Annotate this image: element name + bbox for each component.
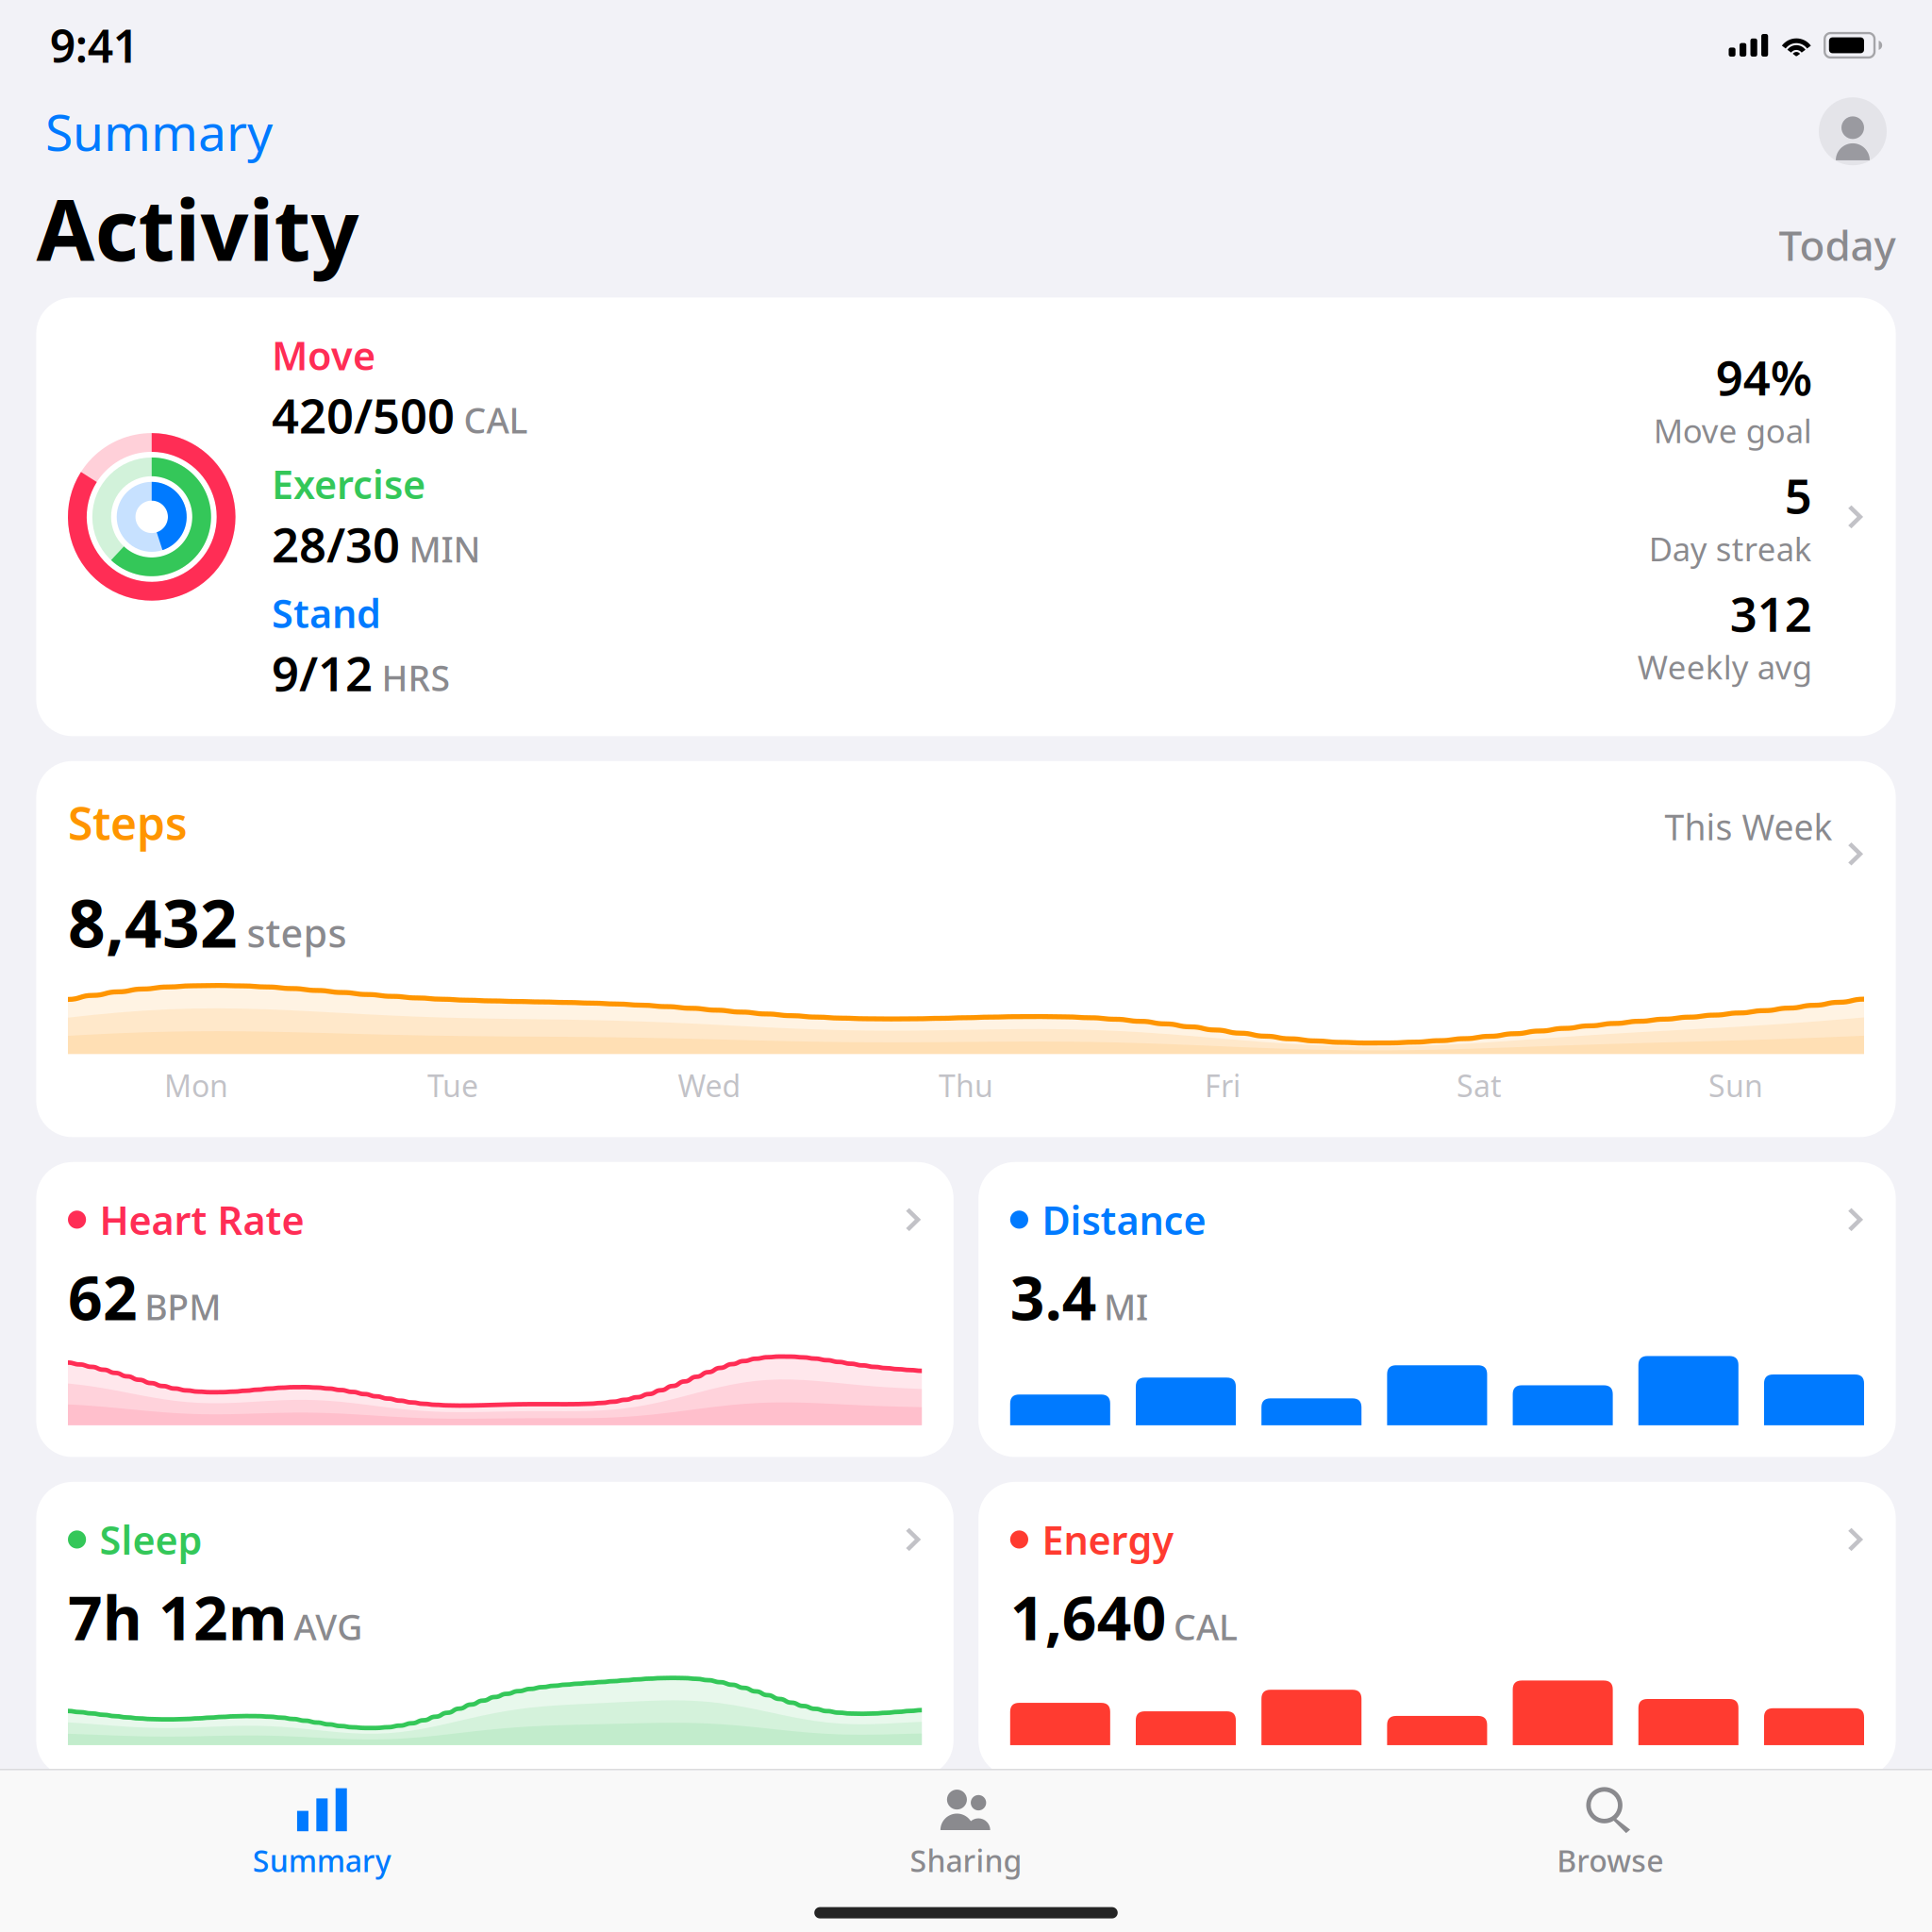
staticText: 94% [1716,345,1812,409]
staticText: Move goal [1654,409,1812,452]
staticText: 9/12 [272,641,373,705]
button[interactable]: Browse [1288,1781,1932,1880]
staticText: 1,640 [1010,1577,1167,1657]
staticText: 5 [1785,463,1812,527]
staticText: AVG [294,1603,362,1650]
staticText: 9:41 [50,15,138,75]
staticText: Sat [1457,1065,1502,1105]
staticText: Sun [1708,1065,1763,1105]
staticText: Summary [45,98,273,165]
staticText: Wed [678,1065,741,1105]
staticText: Summary [253,1840,391,1880]
staticText: 3.4 [1010,1257,1097,1337]
staticText: 8,432 [68,879,238,966]
staticText: Browse [1557,1840,1663,1880]
staticText: CAL [464,396,528,443]
staticText: 28/30 [272,512,400,576]
staticText: Day streak [1649,527,1812,570]
button[interactable]: Heart Rate [36,1162,954,1457]
button[interactable]: Energy [978,1482,1896,1777]
staticText: 62 [68,1257,138,1337]
staticText: This Week [1664,803,1832,850]
button[interactable]: Summary [45,91,273,172]
button[interactable]: Steps [36,761,1896,1137]
staticText: Sleep [100,1514,202,1565]
staticText: 420/500 [272,383,455,447]
button[interactable]: Summary [0,1781,644,1880]
button[interactable]: Sharing [644,1781,1288,1880]
staticText: Mon [164,1065,228,1105]
button[interactable]: Profile [1819,97,1887,165]
button[interactable]: Move [36,298,1896,736]
staticText: Move [272,329,375,381]
staticText: HRS [382,654,451,701]
staticText: Weekly avg [1637,645,1812,688]
staticText: Activity [36,172,359,284]
staticText: Exercise [272,458,425,510]
staticText: Fri [1205,1065,1241,1105]
staticText: Distance [1042,1194,1206,1246]
staticText: Tue [427,1065,478,1105]
staticText: BPM [145,1283,221,1330]
staticText: Steps [68,793,188,853]
staticText: MIN [409,525,481,572]
staticText: CAL [1174,1603,1238,1650]
staticText: Sharing [910,1840,1022,1880]
staticText: Heart Rate [100,1194,304,1246]
staticText: Energy [1042,1514,1174,1565]
staticText: Today [1779,217,1896,272]
staticText: Thu [939,1065,993,1105]
button[interactable]: Distance [978,1162,1896,1457]
staticText: MI [1104,1283,1148,1330]
staticText: 7h 12m [68,1577,287,1657]
staticText: steps [247,907,347,958]
button[interactable]: Sleep [36,1482,954,1777]
staticText: 312 [1730,582,1812,645]
staticText: Stand [272,587,381,639]
